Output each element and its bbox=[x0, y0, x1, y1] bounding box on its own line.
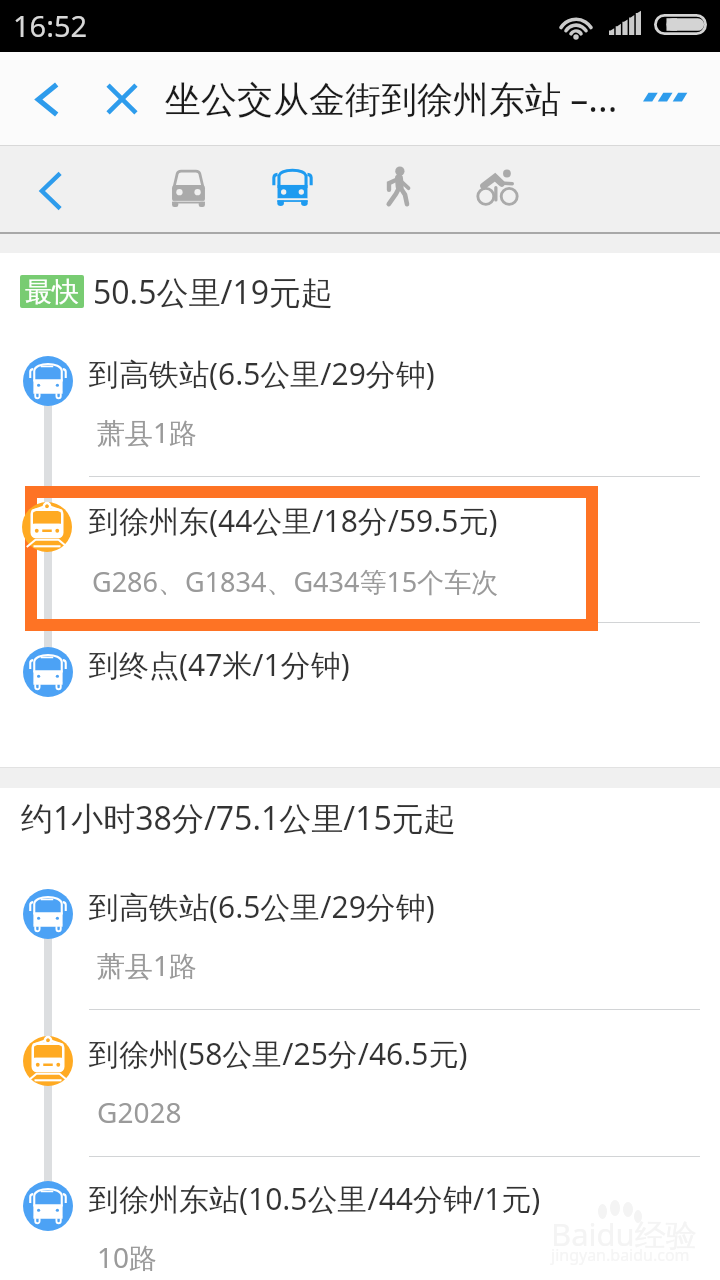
staticText: 16:52 bbox=[13, 6, 88, 45]
button[interactable]: Back bbox=[12, 147, 90, 235]
staticText: 到高铁站(6.5公里/29分钟) bbox=[89, 353, 435, 394]
staticText: 到终点(47米/1分钟) bbox=[89, 644, 350, 685]
button[interactable]: 到徐州(58公里/25分/46.5元) bbox=[89, 1021, 700, 1141]
button[interactable]: 到徐州东站(10.5公里/44分钟/1元) bbox=[89, 1166, 700, 1280]
button[interactable]: Close bbox=[90, 52, 154, 146]
button[interactable]: 到徐州东(44公里/18分/59.5元) bbox=[25, 486, 598, 631]
button[interactable]: 到高铁站(6.5公里/29分钟) bbox=[89, 341, 700, 461]
staticText: 最快 bbox=[25, 275, 79, 308]
button[interactable]: Back bbox=[14, 52, 80, 146]
button[interactable]: 到高铁站(6.5公里/29分钟) bbox=[89, 874, 700, 994]
button[interactable]: More options bbox=[624, 50, 704, 144]
staticText: 50.5公里/19元起 bbox=[93, 270, 334, 310]
button[interactable]: 最快 bbox=[20, 271, 334, 311]
button[interactable]: Transit bbox=[248, 142, 336, 230]
staticText: 到徐州东(44公里/18分/59.5元) bbox=[89, 500, 498, 541]
staticText: 到徐州(58公里/25分/46.5元) bbox=[89, 1033, 468, 1074]
staticText: G286、G1834、G434等15个车次 bbox=[92, 563, 499, 600]
staticText: 萧县1路 bbox=[97, 946, 198, 984]
staticText: Baidu经验 bbox=[551, 1213, 697, 1255]
staticText: 10路 bbox=[97, 1238, 158, 1276]
button[interactable]: Walk bbox=[354, 142, 442, 230]
button[interactable]: 到终点(47米/1分钟) bbox=[89, 632, 700, 692]
button[interactable]: 约1小时38分/75.1公里/15元起 bbox=[21, 796, 456, 840]
staticText: G2028 bbox=[97, 1093, 182, 1131]
staticText: jingyan.baidu.com bbox=[551, 1244, 690, 1266]
staticText: 到高铁站(6.5公里/29分钟) bbox=[89, 886, 435, 927]
staticText: 坐公交从金街到徐州东站 –... bbox=[165, 74, 635, 123]
button[interactable]: Drive bbox=[144, 142, 232, 230]
button[interactable]: Bike bbox=[453, 142, 541, 230]
staticText: 到徐州东站(10.5公里/44分钟/1元) bbox=[89, 1178, 541, 1219]
staticText: 萧县1路 bbox=[97, 413, 198, 451]
